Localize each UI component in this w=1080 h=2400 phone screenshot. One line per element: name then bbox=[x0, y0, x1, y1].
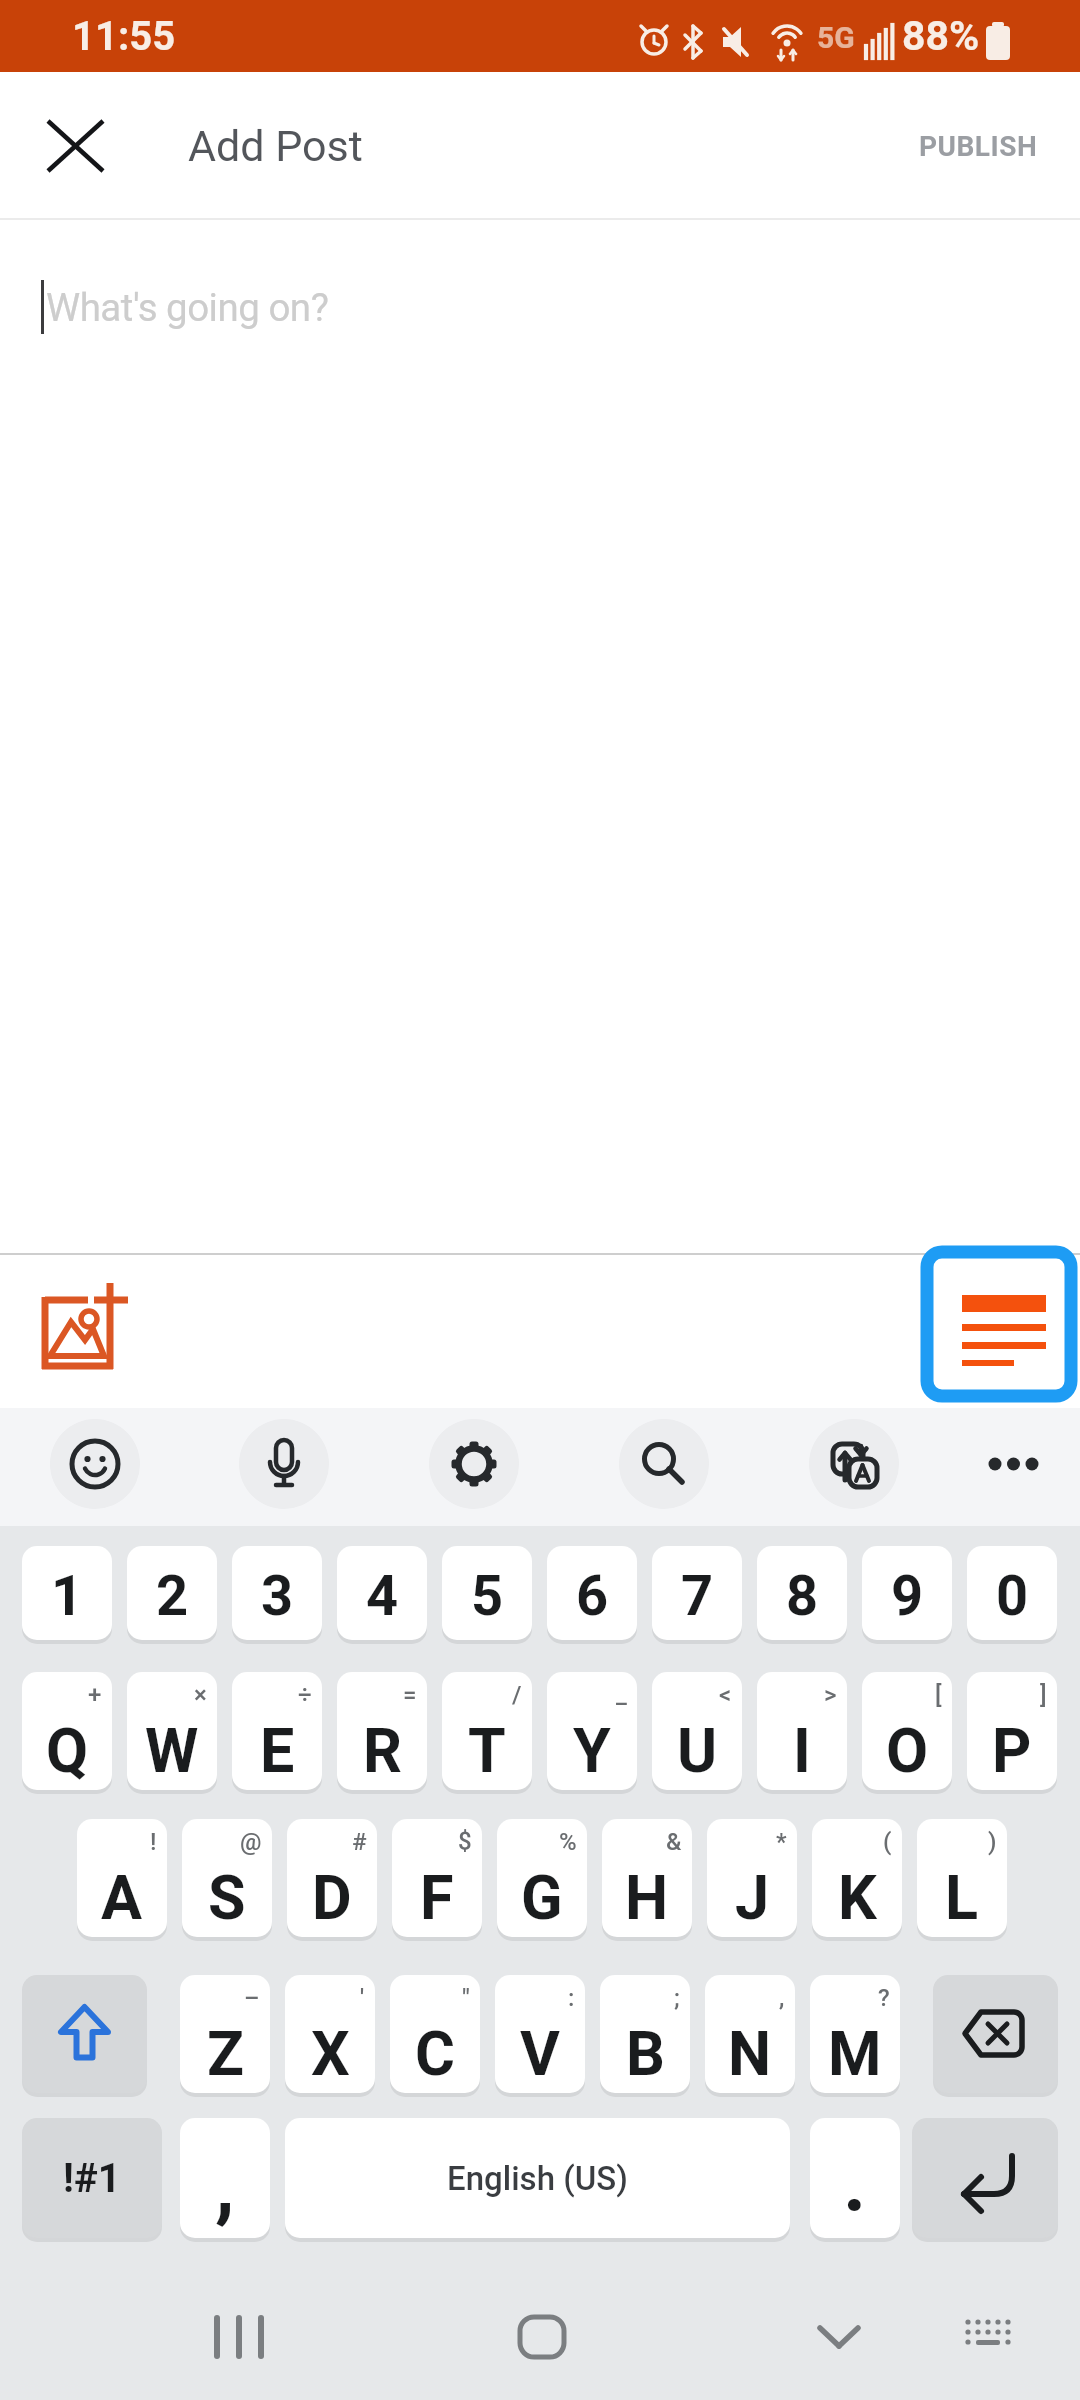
staticText: 4 bbox=[366, 1563, 399, 1629]
button[interactable]: 9 bbox=[862, 1546, 952, 1640]
button[interactable] bbox=[921, 1246, 1077, 1402]
staticText: PUBLISH bbox=[919, 130, 1038, 163]
button[interactable] bbox=[790, 2310, 890, 2400]
staticText: G bbox=[521, 1862, 563, 1933]
staticText: + bbox=[88, 1681, 102, 1709]
button[interactable]: English (US) bbox=[285, 2118, 790, 2238]
staticText: M bbox=[828, 2018, 882, 2089]
button[interactable] bbox=[809, 1419, 899, 1509]
button[interactable]: C bbox=[390, 1975, 480, 2093]
staticText: 5 bbox=[471, 1563, 504, 1629]
staticText: F bbox=[420, 1862, 454, 1933]
button[interactable] bbox=[22, 1975, 147, 2093]
staticText: I bbox=[793, 1715, 811, 1786]
button[interactable] bbox=[940, 2310, 1040, 2400]
button[interactable]: N bbox=[705, 1975, 795, 2093]
staticText: 5G bbox=[817, 20, 855, 55]
staticText: S bbox=[208, 1862, 246, 1933]
button[interactable]: Y bbox=[547, 1672, 637, 1790]
button[interactable]: G bbox=[497, 1819, 587, 1937]
staticText: Add Post bbox=[188, 121, 363, 171]
button[interactable] bbox=[50, 1419, 140, 1509]
staticText: 7 bbox=[681, 1563, 714, 1629]
staticText: C bbox=[415, 2018, 455, 2089]
button[interactable] bbox=[912, 2118, 1058, 2238]
staticText: What's going on? bbox=[46, 285, 329, 330]
button[interactable]: D bbox=[287, 1819, 377, 1937]
staticText: 9 bbox=[891, 1563, 924, 1629]
button[interactable]: 7 bbox=[652, 1546, 742, 1640]
button[interactable]: 1 bbox=[22, 1546, 112, 1640]
button[interactable]: F bbox=[392, 1819, 482, 1937]
button[interactable]: Z bbox=[180, 1975, 270, 2093]
button[interactable]: P bbox=[967, 1672, 1057, 1790]
staticText: 11:55 bbox=[72, 13, 176, 60]
button[interactable]: 3 bbox=[232, 1546, 322, 1640]
button[interactable]: X bbox=[285, 1975, 375, 2093]
staticText: 1 bbox=[51, 1563, 84, 1629]
button[interactable] bbox=[28, 1272, 140, 1384]
button[interactable]: L bbox=[917, 1819, 1007, 1937]
button[interactable]: A bbox=[77, 1819, 167, 1937]
staticText: * bbox=[776, 1828, 787, 1856]
button[interactable]: O bbox=[862, 1672, 952, 1790]
staticText: K bbox=[838, 1862, 877, 1933]
staticText: W bbox=[145, 1715, 199, 1786]
staticText: Y bbox=[573, 1715, 611, 1786]
button[interactable]: B bbox=[600, 1975, 690, 2093]
button[interactable]: U bbox=[652, 1672, 742, 1790]
button[interactable] bbox=[239, 1419, 329, 1509]
button[interactable]: K bbox=[812, 1819, 902, 1937]
button[interactable]: . bbox=[810, 2118, 900, 2238]
staticText: D bbox=[312, 1862, 352, 1933]
staticText: ! bbox=[150, 1828, 157, 1856]
staticText: % bbox=[559, 1828, 577, 1856]
staticText: ) bbox=[988, 1828, 997, 1856]
staticText: , bbox=[779, 1984, 785, 2012]
staticText: L bbox=[945, 1862, 979, 1933]
button[interactable] bbox=[933, 1975, 1058, 2093]
button[interactable]: 5 bbox=[442, 1546, 532, 1640]
button[interactable]: T bbox=[442, 1672, 532, 1790]
button[interactable]: Q bbox=[22, 1672, 112, 1790]
button[interactable] bbox=[619, 1419, 709, 1509]
button[interactable]: 0 bbox=[967, 1546, 1057, 1640]
button[interactable] bbox=[429, 1419, 519, 1509]
staticText: Z bbox=[207, 2018, 244, 2089]
button[interactable] bbox=[492, 2310, 592, 2400]
staticText: T bbox=[468, 1715, 506, 1786]
button[interactable]: 2 bbox=[127, 1546, 217, 1640]
button[interactable]: , bbox=[180, 2118, 270, 2238]
button[interactable] bbox=[30, 101, 120, 191]
button[interactable]: 8 bbox=[757, 1546, 847, 1640]
button[interactable]: I bbox=[757, 1672, 847, 1790]
button[interactable] bbox=[190, 2310, 290, 2400]
button[interactable]: !#1 bbox=[22, 2118, 162, 2238]
button[interactable]: V bbox=[495, 1975, 585, 2093]
staticText: ÷ bbox=[298, 1681, 312, 1709]
button[interactable]: H bbox=[602, 1819, 692, 1937]
staticText: O bbox=[886, 1715, 929, 1786]
staticText: [ bbox=[935, 1681, 942, 1709]
staticText: , bbox=[215, 2139, 235, 2233]
button[interactable]: 6 bbox=[547, 1546, 637, 1640]
staticText: U bbox=[677, 1715, 718, 1786]
staticText: !#1 bbox=[63, 2155, 121, 2202]
staticText: 8 bbox=[786, 1563, 819, 1629]
button[interactable]: S bbox=[182, 1819, 272, 1937]
button[interactable]: R bbox=[337, 1672, 427, 1790]
staticText: H bbox=[625, 1862, 669, 1933]
button[interactable]: PUBLISH bbox=[880, 84, 1038, 208]
button[interactable]: 4 bbox=[337, 1546, 427, 1640]
button[interactable]: W bbox=[127, 1672, 217, 1790]
button[interactable] bbox=[975, 1430, 1051, 1498]
staticText: × bbox=[194, 1681, 207, 1709]
staticText: < bbox=[719, 1681, 732, 1709]
staticText: @ bbox=[240, 1828, 262, 1856]
staticText: ] bbox=[1040, 1681, 1047, 1709]
button[interactable]: E bbox=[232, 1672, 322, 1790]
staticText: . bbox=[843, 2137, 867, 2231]
button[interactable]: M bbox=[810, 1975, 900, 2093]
staticText: A bbox=[101, 1862, 143, 1933]
button[interactable]: J bbox=[707, 1819, 797, 1937]
